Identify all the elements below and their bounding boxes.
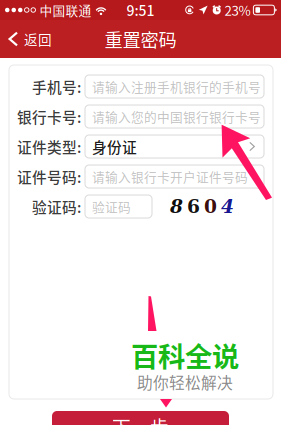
button[interactable]: 返回	[0, 20, 62, 58]
staticText: 中国联通	[39, 1, 91, 19]
staticText: 证件号码:	[17, 166, 81, 187]
staticText: 身份证	[92, 136, 137, 157]
staticText: 银行卡号:	[17, 106, 81, 127]
staticText: 证件类型:	[17, 136, 81, 157]
staticText: 9:51	[126, 0, 154, 20]
staticText: 百科全说	[131, 335, 239, 375]
staticText: 下一步	[112, 412, 169, 425]
staticText: 请输入您的中国银行银行卡号	[92, 107, 261, 126]
staticText: 8	[170, 195, 183, 217]
staticText: 手机号:	[32, 76, 81, 97]
staticText: 请输入银行卡开户证件号码	[92, 167, 248, 186]
staticText: 验证码:	[32, 196, 81, 217]
staticText: 重置密码	[104, 26, 176, 52]
button[interactable]: 身份证	[85, 135, 264, 158]
staticText: 助你轻松解决	[137, 371, 233, 393]
staticText: 0	[204, 195, 217, 217]
staticText: 请输入注册手机银行的手机号	[92, 77, 261, 96]
staticText: 23%	[224, 0, 250, 20]
button[interactable]: 下一步	[52, 411, 229, 425]
staticText: 验证码	[92, 197, 131, 216]
staticText: 6	[187, 195, 200, 217]
staticText: 返回	[24, 29, 52, 49]
staticText: 4	[221, 195, 234, 217]
